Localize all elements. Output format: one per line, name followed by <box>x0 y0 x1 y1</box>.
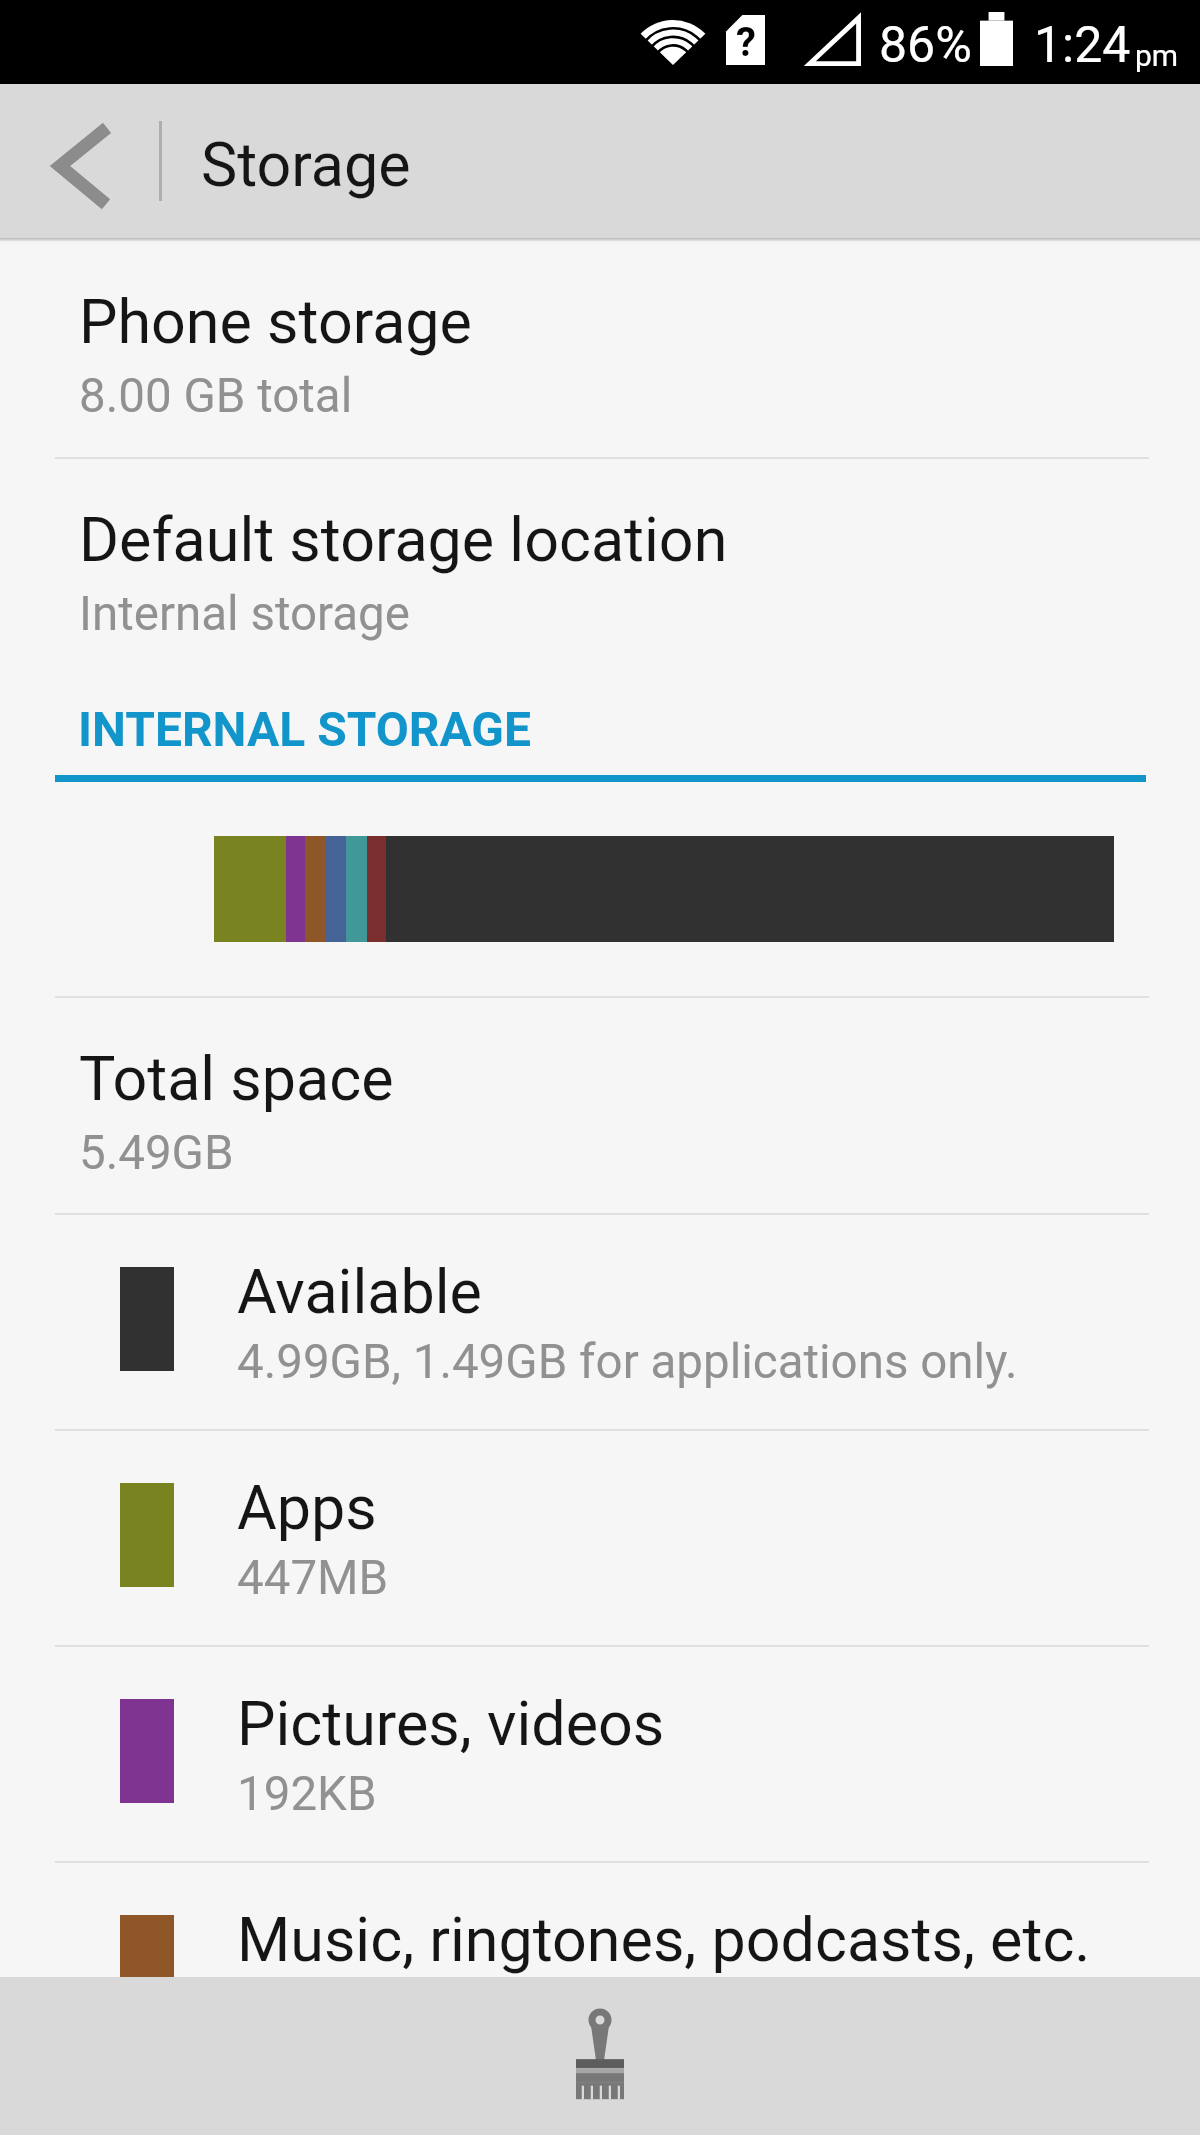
button[interactable]: Total space <box>0 1041 1200 1257</box>
staticText: Phone storage <box>79 286 472 357</box>
staticText: Available <box>237 1256 482 1327</box>
staticText: 192KB <box>237 1766 377 1822</box>
button[interactable]: Music, ringtones, podcasts, etc. <box>0 1863 1200 1977</box>
staticText: pm <box>1135 38 1179 73</box>
staticText: 5.49GB <box>79 1125 234 1181</box>
button[interactable]: Apps <box>0 1431 1200 1647</box>
button[interactable]: Available <box>0 1215 1200 1431</box>
button[interactable]: Default storage location <box>0 502 1200 718</box>
staticText: Default storage location <box>79 504 728 575</box>
staticText: Internal storage <box>79 586 410 642</box>
staticText: 8.00 GB total <box>79 368 353 424</box>
staticText: 86% <box>879 16 972 75</box>
staticText: Storage <box>201 129 411 200</box>
staticText: INTERNAL STORAGE <box>78 701 532 757</box>
button[interactable]: INTERNAL STORAGE <box>0 682 1200 776</box>
staticText: Total space <box>79 1043 394 1114</box>
staticText: 447MB <box>237 1550 389 1606</box>
staticText: Pictures, videos <box>237 1688 665 1759</box>
button[interactable]: Phone storage <box>0 284 1200 500</box>
staticText: 1:24 <box>1034 16 1131 75</box>
staticText: Music, ringtones, podcasts, etc. <box>237 1904 1091 1975</box>
button[interactable]: Pictures, videos <box>0 1647 1200 1863</box>
staticText: ? <box>736 19 756 66</box>
button[interactable]: Navigate up <box>0 84 160 238</box>
staticText: 4.99GB, 1.49GB for applications only. <box>237 1334 1018 1390</box>
button[interactable]: Clean up storage <box>520 1977 680 2135</box>
staticText: Apps <box>237 1472 377 1543</box>
